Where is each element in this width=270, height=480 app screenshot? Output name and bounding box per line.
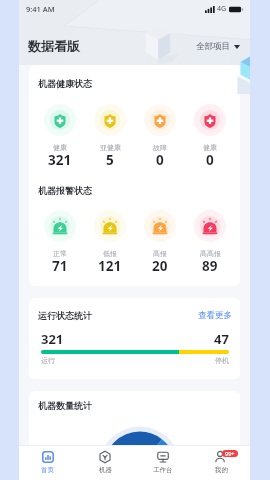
button[interactable]: 高报 [135,210,185,276]
button[interactable]: 机器 [76,446,134,480]
staticText: 运行状态统计 [38,310,92,321]
button[interactable]: 我的 [192,446,250,480]
button[interactable]: 故障 [135,104,185,170]
button[interactable]: 健康 [185,104,235,170]
staticText: 数据看版 [28,38,80,54]
button[interactable]: 首页 [19,446,76,480]
staticText: 0 [156,151,164,169]
button[interactable]: 正常 [34,210,85,276]
staticText: 高高报 [200,249,221,258]
button[interactable]: 亚健康 [85,104,135,170]
staticText: 机器数量统计 [38,400,92,411]
staticText: 正常 [53,249,67,258]
button[interactable]: 工作台 [134,446,192,480]
staticText: 健康 [203,143,217,152]
staticText: 99+ [225,450,235,457]
staticText: 低报 [103,249,117,258]
button[interactable]: 查看更多 [198,310,232,321]
staticText: 故障 [153,143,167,152]
staticText: 71 [52,257,68,275]
staticText: 机器 [99,466,112,474]
staticText: 47 [214,330,229,348]
staticText: 健康 [53,143,67,152]
staticText: 机器健康状态 [38,78,92,89]
staticText: 工作台 [153,466,173,474]
staticText: 321 [41,330,64,348]
staticText: 9:41 AM [26,4,55,14]
button[interactable]: 低报 [85,210,135,276]
staticText: 321 [48,151,72,169]
staticText: 5 [106,151,114,169]
staticText: 89 [202,257,218,275]
staticText: 机器报警状态 [38,185,92,196]
staticText: 全部项目 [196,41,230,52]
staticText: 121 [98,257,122,275]
staticText: 查看更多 [198,310,232,321]
staticText: 首页 [41,466,54,474]
staticText: 我的 [215,466,228,474]
staticText: 运行 [41,356,55,365]
staticText: 亚健康 [100,143,121,152]
staticText: 停机 [215,356,229,365]
staticText: 20 [152,257,168,275]
staticText: 高报 [153,249,167,258]
button[interactable]: 健康 [34,104,85,170]
staticText: 0 [206,151,214,169]
staticText: 4G [217,4,227,14]
button[interactable]: 高高报 [185,210,235,276]
button[interactable]: 全部项目 [193,37,243,56]
